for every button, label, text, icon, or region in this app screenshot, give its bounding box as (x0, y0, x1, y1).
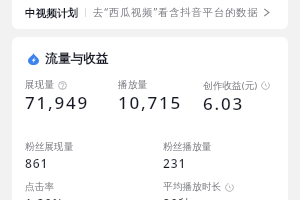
staticText: 平均播放时长 (163, 181, 222, 193)
staticText: 20秒 (163, 195, 192, 200)
button[interactable]: 展现量 (25, 79, 90, 114)
other: Open (263, 8, 270, 17)
button[interactable] (12, 0, 288, 29)
staticText: 231 (163, 155, 187, 171)
button[interactable]: 创作收益(元) (203, 79, 270, 115)
staticText: 71,949 (25, 91, 90, 114)
button[interactable]: 播放量 (118, 79, 183, 114)
button[interactable]: 去“西瓜视频”看含抖音平台的数据 (93, 5, 270, 19)
staticText: 点击率 (25, 181, 55, 193)
button[interactable]: 流量与收益 (45, 51, 109, 67)
button[interactable]: 平均播放时长 (163, 181, 234, 200)
staticText: 6.03 (203, 92, 244, 115)
staticText: 粉丝展现量 (25, 141, 74, 153)
button[interactable]: 粉丝展现量 (25, 141, 74, 171)
staticText: 1.20% (25, 195, 64, 200)
staticText: 展现量 (25, 79, 55, 91)
button[interactable]: 点击率 (25, 181, 64, 200)
staticText: 创作收益(元) (203, 79, 258, 92)
staticText: 粉丝播放量 (163, 141, 212, 153)
staticText: 10,715 (118, 91, 183, 114)
staticText: 播放量 (118, 79, 148, 91)
staticText: 去“西瓜视频”看含抖音平台的数据 (93, 5, 259, 19)
button[interactable]: 中视频计划 (25, 7, 78, 20)
staticText: 861 (25, 155, 49, 171)
button[interactable]: 粉丝播放量 (163, 141, 212, 171)
